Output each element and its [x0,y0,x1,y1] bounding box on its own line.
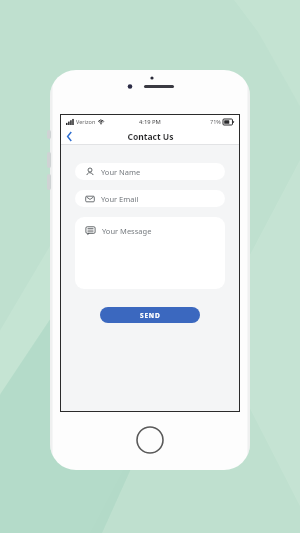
button[interactable]: Back [61,128,77,145]
staticText: SEND [140,311,161,320]
button[interactable]: Your Email [75,190,225,207]
staticText: 4:19 PM [139,118,161,126]
button[interactable]: Your Message [75,217,225,289]
staticText: Verizon [76,118,96,125]
button[interactable]: Your Name [75,163,225,180]
staticText: Your Message [102,226,152,236]
staticText: Contact Us [127,131,174,143]
staticText: Your Name [101,167,141,177]
staticText: Your Email [101,194,139,204]
staticText: 71% [210,118,221,125]
button[interactable]: SEND [100,307,200,323]
